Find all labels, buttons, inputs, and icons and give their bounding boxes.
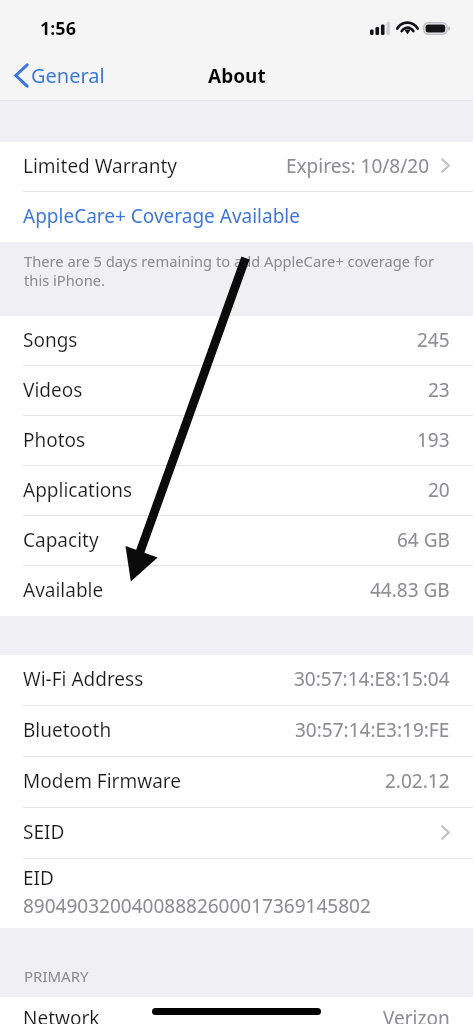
button[interactable]: Capacity — [0, 516, 473, 566]
staticText: 245 — [417, 327, 450, 353]
button[interactable]: Network — [0, 997, 473, 1024]
staticText: EID — [23, 865, 54, 891]
button[interactable]: SEID — [0, 808, 473, 859]
button[interactable]: Modem Firmware — [0, 757, 473, 808]
staticText: Applications — [23, 477, 133, 503]
staticText: SEID — [23, 819, 65, 845]
button[interactable]: Applications — [0, 466, 473, 516]
button[interactable]: Available — [0, 566, 473, 616]
staticText: Photos — [23, 427, 86, 453]
staticText: Wi-Fi Address — [23, 666, 144, 692]
staticText: 44.83 GB — [370, 577, 450, 603]
staticText: Songs — [23, 327, 78, 353]
staticText: 23 — [428, 377, 450, 403]
button[interactable]: Back to General — [14, 62, 105, 89]
staticText: Capacity — [23, 527, 99, 553]
staticText: 64 GB — [397, 527, 450, 553]
button[interactable]: EID — [0, 859, 473, 928]
button[interactable]: Videos — [0, 366, 473, 416]
button[interactable]: Songs — [0, 316, 473, 366]
staticText: Modem Firmware — [23, 768, 181, 794]
staticText: About — [208, 63, 266, 89]
button[interactable]: Bluetooth — [0, 706, 473, 757]
staticText: 20 — [428, 477, 450, 503]
button[interactable]: Limited Warranty — [0, 142, 473, 192]
staticText: Expires: 10/8/20 — [286, 153, 429, 179]
staticText: 193 — [417, 427, 450, 453]
staticText: Verizon — [383, 1005, 450, 1024]
staticText: 1:56 — [40, 16, 76, 41]
button[interactable]: Photos — [0, 416, 473, 466]
staticText: PRIMARY — [24, 966, 89, 986]
button[interactable]: Wi-Fi Address — [0, 655, 473, 706]
staticText: There are 5 days remaining to add AppleC… — [24, 251, 454, 291]
staticText: 30:57:14:E8:15:04 — [294, 666, 450, 692]
staticText: Bluetooth — [23, 717, 112, 743]
staticText: Limited Warranty — [23, 153, 177, 179]
staticText: Videos — [23, 377, 83, 403]
staticText: 89049032004008882600017369145802 — [23, 893, 371, 919]
staticText: General — [31, 62, 105, 89]
staticText: 2.02.12 — [385, 768, 450, 794]
button[interactable]: AppleCare+ Coverage Available — [0, 192, 473, 242]
staticText: AppleCare+ Coverage Available — [23, 203, 300, 229]
staticText: Available — [23, 577, 104, 603]
staticText: 30:57:14:E3:19:FE — [295, 717, 450, 743]
staticText: Network — [23, 1005, 100, 1024]
